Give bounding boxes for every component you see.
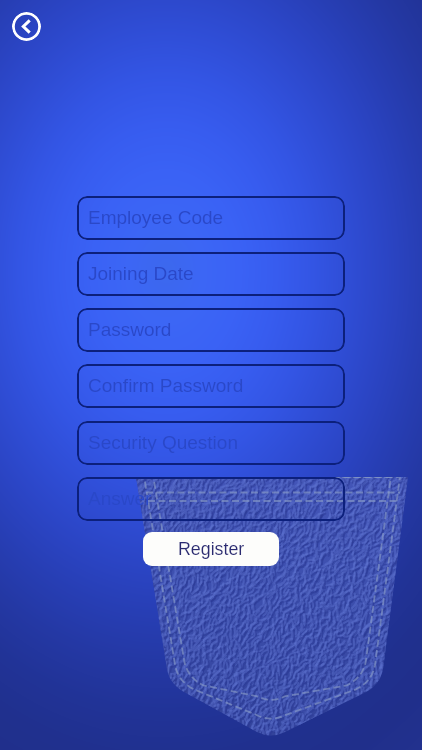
staticText: Answer xyxy=(88,488,152,509)
staticText: Security Question xyxy=(88,432,238,453)
staticText: Joining Date xyxy=(88,263,194,284)
button[interactable]: Security Question xyxy=(77,421,345,465)
button[interactable]: Joining Date xyxy=(77,252,345,296)
button[interactable]: Back xyxy=(12,12,41,41)
button[interactable]: Employee Code xyxy=(77,196,345,240)
button[interactable]: Confirm Password xyxy=(77,364,345,408)
staticText: Confirm Password xyxy=(88,375,244,396)
staticText: Password xyxy=(88,319,172,340)
button[interactable]: Password xyxy=(77,308,345,352)
staticText: Register xyxy=(178,539,245,559)
button[interactable]: Register xyxy=(143,532,279,566)
button[interactable]: Answer xyxy=(77,477,345,521)
staticText: Employee Code xyxy=(88,207,224,228)
